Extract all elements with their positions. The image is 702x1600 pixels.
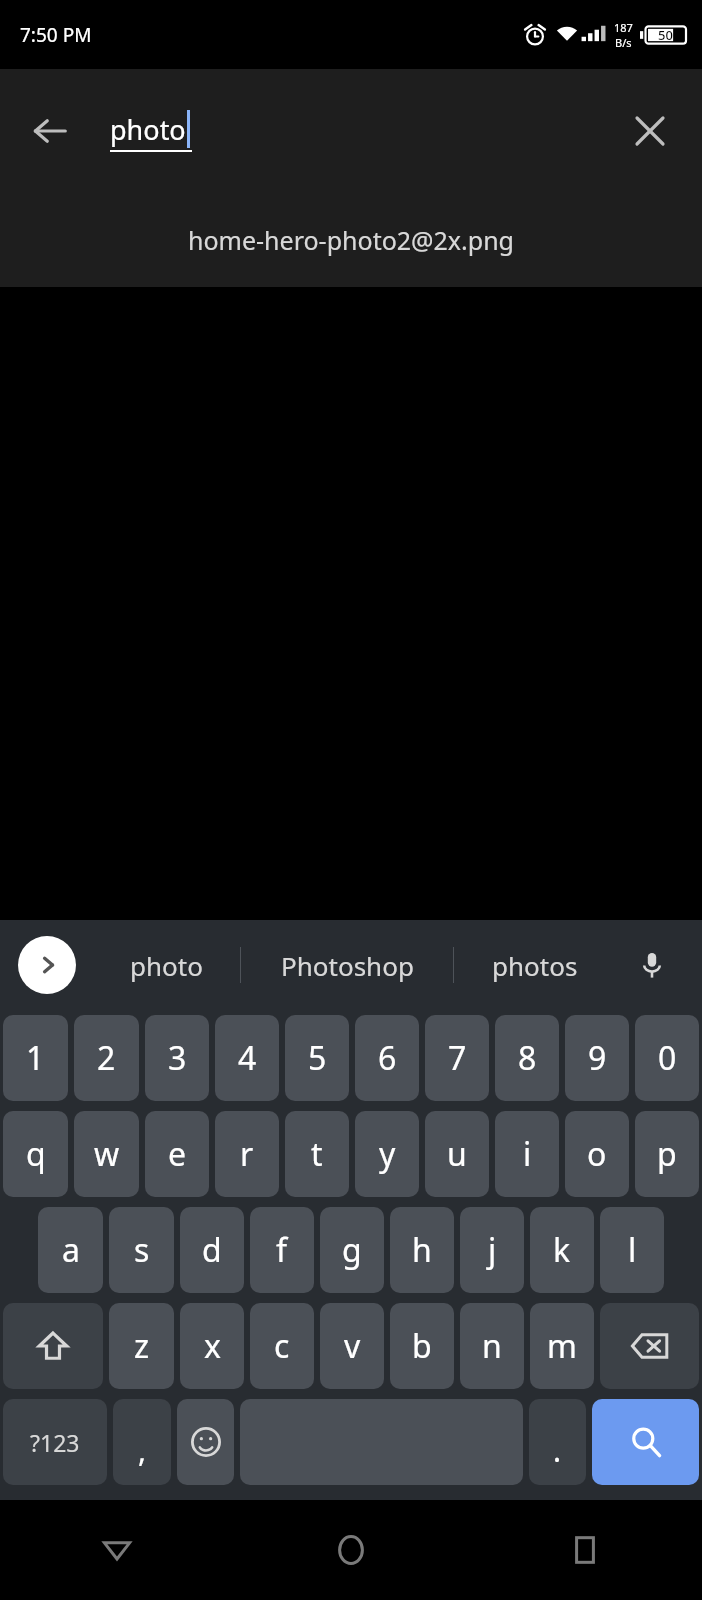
button[interactable]: d — [180, 1207, 244, 1293]
button[interactable]: k — [530, 1207, 594, 1293]
staticText: , — [138, 1430, 147, 1471]
staticText: 6 — [378, 1036, 397, 1080]
button[interactable]: x — [180, 1303, 244, 1389]
button[interactable]: q — [3, 1111, 68, 1197]
staticText: ?123 — [30, 1427, 80, 1458]
staticText: . — [553, 1430, 562, 1471]
staticText: photos — [492, 948, 578, 983]
button[interactable]: c — [250, 1303, 314, 1389]
staticText: home-hero-photo2@2x.png — [188, 223, 514, 257]
button[interactable]: More suggestions — [18, 936, 76, 994]
button[interactable]: e — [145, 1111, 209, 1197]
staticText: h — [412, 1228, 432, 1272]
button[interactable]: 4 — [215, 1015, 279, 1101]
staticText: 50 — [658, 26, 673, 44]
button[interactable]: home-hero-photo2@2x.png — [0, 193, 702, 287]
button[interactable]: 2 — [74, 1015, 139, 1101]
staticText: t — [311, 1132, 323, 1176]
button[interactable]: 7 — [425, 1015, 489, 1101]
button[interactable]: Voice input — [624, 937, 680, 993]
staticText: g — [342, 1228, 362, 1272]
button[interactable]: 5 — [285, 1015, 349, 1101]
staticText: 0 — [658, 1036, 677, 1080]
button[interactable]: z — [109, 1303, 174, 1389]
button[interactable]: i — [495, 1111, 559, 1197]
staticText: 5 — [308, 1036, 327, 1080]
button[interactable]: j — [460, 1207, 524, 1293]
button[interactable]: b — [390, 1303, 454, 1389]
staticText: a — [62, 1228, 80, 1272]
staticText: photo — [130, 948, 203, 983]
staticText: c — [274, 1324, 290, 1368]
button[interactable]: 6 — [355, 1015, 419, 1101]
button[interactable]: Recents — [468, 1500, 702, 1600]
staticText: r — [240, 1132, 254, 1176]
button[interactable]: photos — [454, 920, 616, 1010]
staticText: 3 — [168, 1036, 187, 1080]
staticText: 187 — [614, 20, 633, 35]
button[interactable]: Photoshop — [241, 920, 453, 1010]
staticText: 7:50 PM — [20, 22, 92, 48]
staticText: f — [276, 1228, 288, 1272]
button[interactable]: s — [109, 1207, 174, 1293]
button[interactable]: Back — [0, 1500, 234, 1600]
staticText: u — [447, 1132, 467, 1176]
button[interactable]: photo — [92, 920, 240, 1010]
staticText: j — [488, 1228, 497, 1272]
button[interactable]: Search — [592, 1399, 699, 1485]
staticText: q — [26, 1132, 46, 1176]
staticText: Photoshop — [281, 948, 414, 983]
staticText: w — [94, 1132, 120, 1176]
button[interactable]: Back — [16, 97, 84, 165]
staticText: p — [657, 1132, 677, 1176]
button[interactable]: v — [320, 1303, 384, 1389]
staticText: photo — [110, 111, 186, 148]
button[interactable]: Shift — [3, 1303, 103, 1389]
staticText: 4 — [238, 1036, 257, 1080]
staticText: y — [379, 1132, 396, 1176]
staticText: 2 — [97, 1036, 116, 1080]
button[interactable]: u — [425, 1111, 489, 1197]
staticText: 7 — [448, 1036, 467, 1080]
button[interactable]: Clear — [616, 97, 684, 165]
button[interactable]: 0 — [635, 1015, 699, 1101]
staticText: o — [587, 1132, 607, 1176]
button[interactable]: Emoji — [177, 1399, 234, 1485]
button[interactable]: Symbols — [3, 1399, 107, 1485]
staticText: 8 — [518, 1036, 537, 1080]
staticText: i — [523, 1132, 532, 1176]
staticText: B/s — [615, 35, 632, 50]
staticText: z — [134, 1324, 150, 1368]
button[interactable]: y — [355, 1111, 419, 1197]
button[interactable]: 8 — [495, 1015, 559, 1101]
button[interactable]: o — [565, 1111, 629, 1197]
staticText: s — [134, 1228, 150, 1272]
staticText: n — [482, 1324, 502, 1368]
button[interactable]: 1 — [3, 1015, 68, 1101]
button[interactable]: 3 — [145, 1015, 209, 1101]
button[interactable]: Period — [529, 1399, 586, 1485]
button[interactable]: Backspace — [600, 1303, 699, 1389]
staticText: v — [344, 1324, 361, 1368]
staticText: e — [168, 1132, 187, 1176]
staticText: b — [412, 1324, 432, 1368]
staticText: d — [202, 1228, 222, 1272]
button[interactable]: f — [250, 1207, 314, 1293]
button[interactable]: Home — [234, 1500, 468, 1600]
staticText: 1 — [26, 1036, 45, 1080]
button[interactable]: 9 — [565, 1015, 629, 1101]
button[interactable]: h — [390, 1207, 454, 1293]
staticText: l — [628, 1228, 637, 1272]
button[interactable]: m — [530, 1303, 594, 1389]
button[interactable]: l — [600, 1207, 664, 1293]
staticText: k — [553, 1228, 571, 1272]
button[interactable]: r — [215, 1111, 279, 1197]
button[interactable]: a — [38, 1207, 103, 1293]
button[interactable]: w — [74, 1111, 139, 1197]
button[interactable]: n — [460, 1303, 524, 1389]
button[interactable]: Comma — [113, 1399, 171, 1485]
button[interactable]: p — [635, 1111, 699, 1197]
button[interactable]: g — [320, 1207, 384, 1293]
button[interactable]: t — [285, 1111, 349, 1197]
